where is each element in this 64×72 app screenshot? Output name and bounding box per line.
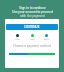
staticText: Card bbox=[15, 38, 20, 41]
button[interactable]: Bank bbox=[44, 34, 49, 41]
staticText: Sign in to continue bbox=[19, 6, 46, 10]
staticText: CONTINUE bbox=[24, 25, 40, 29]
staticText: Use your account to proceed bbox=[12, 10, 53, 14]
button[interactable]: CONTINUE bbox=[6, 24, 58, 30]
button[interactable]: Cash bbox=[30, 34, 35, 41]
staticText: with the payment bbox=[20, 14, 45, 18]
staticText: Bank bbox=[44, 38, 49, 41]
staticText: Choose a payment method bbox=[5, 44, 59, 48]
button[interactable]: Card bbox=[15, 34, 20, 41]
staticText: Cash bbox=[30, 38, 35, 41]
